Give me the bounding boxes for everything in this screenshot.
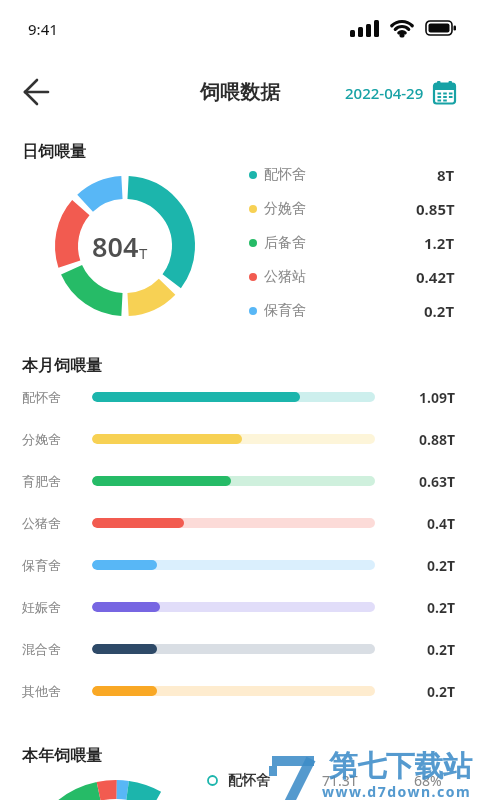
button[interactable]: 分娩舍 [249, 192, 455, 226]
button[interactable]: 保育舍 [249, 294, 455, 328]
staticText: 2022-04-29 [345, 83, 424, 103]
staticText: www.d7down.com [322, 782, 472, 800]
button[interactable]: 公猪站 [249, 260, 455, 294]
button[interactable] [24, 79, 50, 105]
button[interactable]: 配怀舍 [207, 771, 442, 790]
staticText: 0.42T [416, 267, 455, 287]
staticText: 分娩舍 [264, 200, 306, 218]
staticText: 配怀舍 [22, 389, 84, 405]
staticText: 0.88T [418, 430, 455, 449]
button[interactable]: 其他舍 [22, 670, 455, 712]
staticText: 71.3T [322, 771, 358, 790]
staticText: 本月饲喂量 [22, 356, 102, 376]
staticText: 育肥舍 [22, 473, 84, 489]
staticText: 后备舍 [264, 234, 306, 252]
staticText: 68% [414, 771, 442, 790]
staticText: 0.2T [426, 640, 455, 659]
staticText: 9:41 [28, 19, 58, 39]
staticText: 保育舍 [264, 302, 306, 320]
staticText: 本年饲喂量 [22, 746, 102, 766]
button[interactable]: 妊娠舍 [22, 586, 455, 628]
staticText: 配怀舍 [228, 772, 270, 790]
staticText: 公猪舍 [22, 515, 84, 531]
staticText: T [139, 243, 148, 263]
button[interactable]: 混合舍 [22, 628, 455, 670]
staticText: 0.2T [424, 301, 455, 321]
staticText: 0.4T [426, 514, 455, 533]
button[interactable]: 后备舍 [249, 226, 455, 260]
staticText: 0.2T [426, 598, 455, 617]
button[interactable]: 配怀舍 [249, 158, 455, 192]
staticText: 0.2T [426, 682, 455, 701]
staticText: 饲喂数据 [200, 80, 280, 105]
staticText: 804 [92, 228, 139, 265]
staticText: 0.63T [418, 472, 455, 491]
staticText: 混合舍 [22, 641, 84, 657]
button[interactable]: 公猪舍 [22, 502, 455, 544]
staticText: 1.09T [418, 388, 455, 407]
button[interactable]: 2022-04-29 [345, 81, 456, 104]
staticText: 分娩舍 [22, 431, 84, 447]
button[interactable]: 保育舍 [22, 544, 455, 586]
staticText: 第七下载站 [329, 748, 472, 785]
staticText: 妊娠舍 [22, 599, 84, 615]
staticText: 0.85T [416, 199, 455, 219]
staticText: 日饲喂量 [22, 142, 86, 162]
button[interactable]: 配怀舍 [22, 376, 455, 418]
staticText: 公猪站 [264, 268, 306, 286]
button[interactable]: 育肥舍 [22, 460, 455, 502]
staticText: 0.2T [426, 556, 455, 575]
staticText: 1.2T [424, 233, 455, 253]
staticText: 保育舍 [22, 557, 84, 573]
staticText: 8T [437, 165, 455, 185]
button[interactable]: 分娩舍 [22, 418, 455, 460]
staticText: 其他舍 [22, 683, 84, 699]
staticText: 配怀舍 [264, 166, 306, 184]
